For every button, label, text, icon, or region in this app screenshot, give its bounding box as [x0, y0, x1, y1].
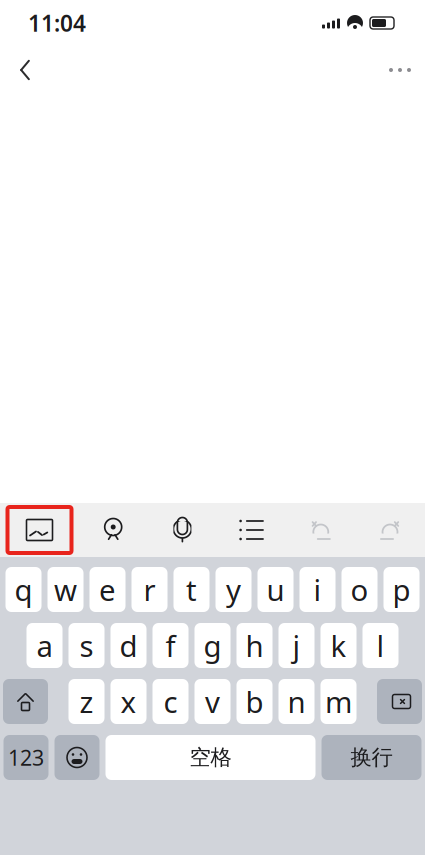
- staticText: h: [245, 626, 263, 665]
- staticText: p: [392, 570, 410, 609]
- button[interactable]: a: [26, 623, 62, 668]
- staticText: 空格: [189, 744, 231, 771]
- staticText: f: [165, 626, 175, 665]
- staticText: w: [54, 570, 77, 609]
- staticText: v: [205, 682, 220, 721]
- button[interactable]: r: [131, 567, 167, 612]
- button[interactable]: Back: [2, 47, 48, 93]
- button[interactable]: l: [362, 623, 398, 668]
- button[interactable]: h: [236, 623, 272, 668]
- staticText: r: [143, 570, 155, 609]
- staticText: a: [36, 626, 52, 665]
- button[interactable]: Shift: [3, 679, 48, 724]
- button[interactable]: Emoji: [54, 735, 99, 780]
- button[interactable]: y: [215, 567, 251, 612]
- button[interactable]: m: [320, 679, 356, 724]
- button[interactable]: o: [341, 567, 377, 612]
- button[interactable]: Voice input: [151, 503, 213, 557]
- button[interactable]: j: [278, 623, 314, 668]
- button[interactable]: v: [194, 679, 230, 724]
- staticText: d: [119, 626, 137, 665]
- button[interactable]: k: [320, 623, 356, 668]
- staticText: g: [203, 626, 221, 665]
- button[interactable]: Insert image: [4, 503, 75, 557]
- button[interactable]: p: [383, 567, 419, 612]
- staticText: c: [163, 682, 177, 721]
- button[interactable]: u: [257, 567, 293, 612]
- button[interactable]: b: [236, 679, 272, 724]
- button[interactable]: f: [152, 623, 188, 668]
- button[interactable]: z: [68, 679, 104, 724]
- staticText: z: [79, 682, 93, 721]
- staticText: e: [99, 570, 116, 609]
- button[interactable]: c: [152, 679, 188, 724]
- staticText: 换行: [350, 744, 392, 771]
- staticText: i: [313, 570, 321, 609]
- staticText: y: [226, 570, 241, 609]
- button[interactable]: q: [5, 567, 41, 612]
- button[interactable]: 123: [3, 735, 48, 780]
- button[interactable]: s: [68, 623, 104, 668]
- staticText: u: [266, 570, 284, 609]
- button[interactable]: Delete: [377, 679, 422, 724]
- button[interactable]: e: [89, 567, 125, 612]
- button[interactable]: w: [47, 567, 83, 612]
- staticText: o: [350, 570, 368, 609]
- button[interactable]: i: [299, 567, 335, 612]
- staticText: b: [245, 682, 263, 721]
- staticText: m: [325, 682, 352, 721]
- staticText: x: [120, 682, 136, 721]
- button[interactable]: Location: [82, 503, 144, 557]
- button[interactable]: d: [110, 623, 146, 668]
- staticText: j: [292, 626, 300, 665]
- staticText: k: [330, 626, 346, 665]
- button[interactable]: Redo: [359, 503, 421, 557]
- button[interactable]: List: [221, 503, 283, 557]
- button[interactable]: Undo: [290, 503, 352, 557]
- staticText: t: [186, 570, 197, 609]
- staticText: s: [79, 626, 93, 665]
- staticText: 123: [8, 743, 44, 772]
- staticText: n: [287, 682, 305, 721]
- button[interactable]: g: [194, 623, 230, 668]
- staticText: 11:04: [28, 8, 86, 38]
- button[interactable]: n: [278, 679, 314, 724]
- staticText: q: [14, 570, 32, 609]
- button[interactable]: t: [173, 567, 209, 612]
- staticText: l: [376, 626, 384, 665]
- button[interactable]: 空格: [105, 735, 315, 780]
- button[interactable]: x: [110, 679, 146, 724]
- button[interactable]: 换行: [321, 735, 421, 780]
- button[interactable]: More options: [377, 47, 423, 93]
